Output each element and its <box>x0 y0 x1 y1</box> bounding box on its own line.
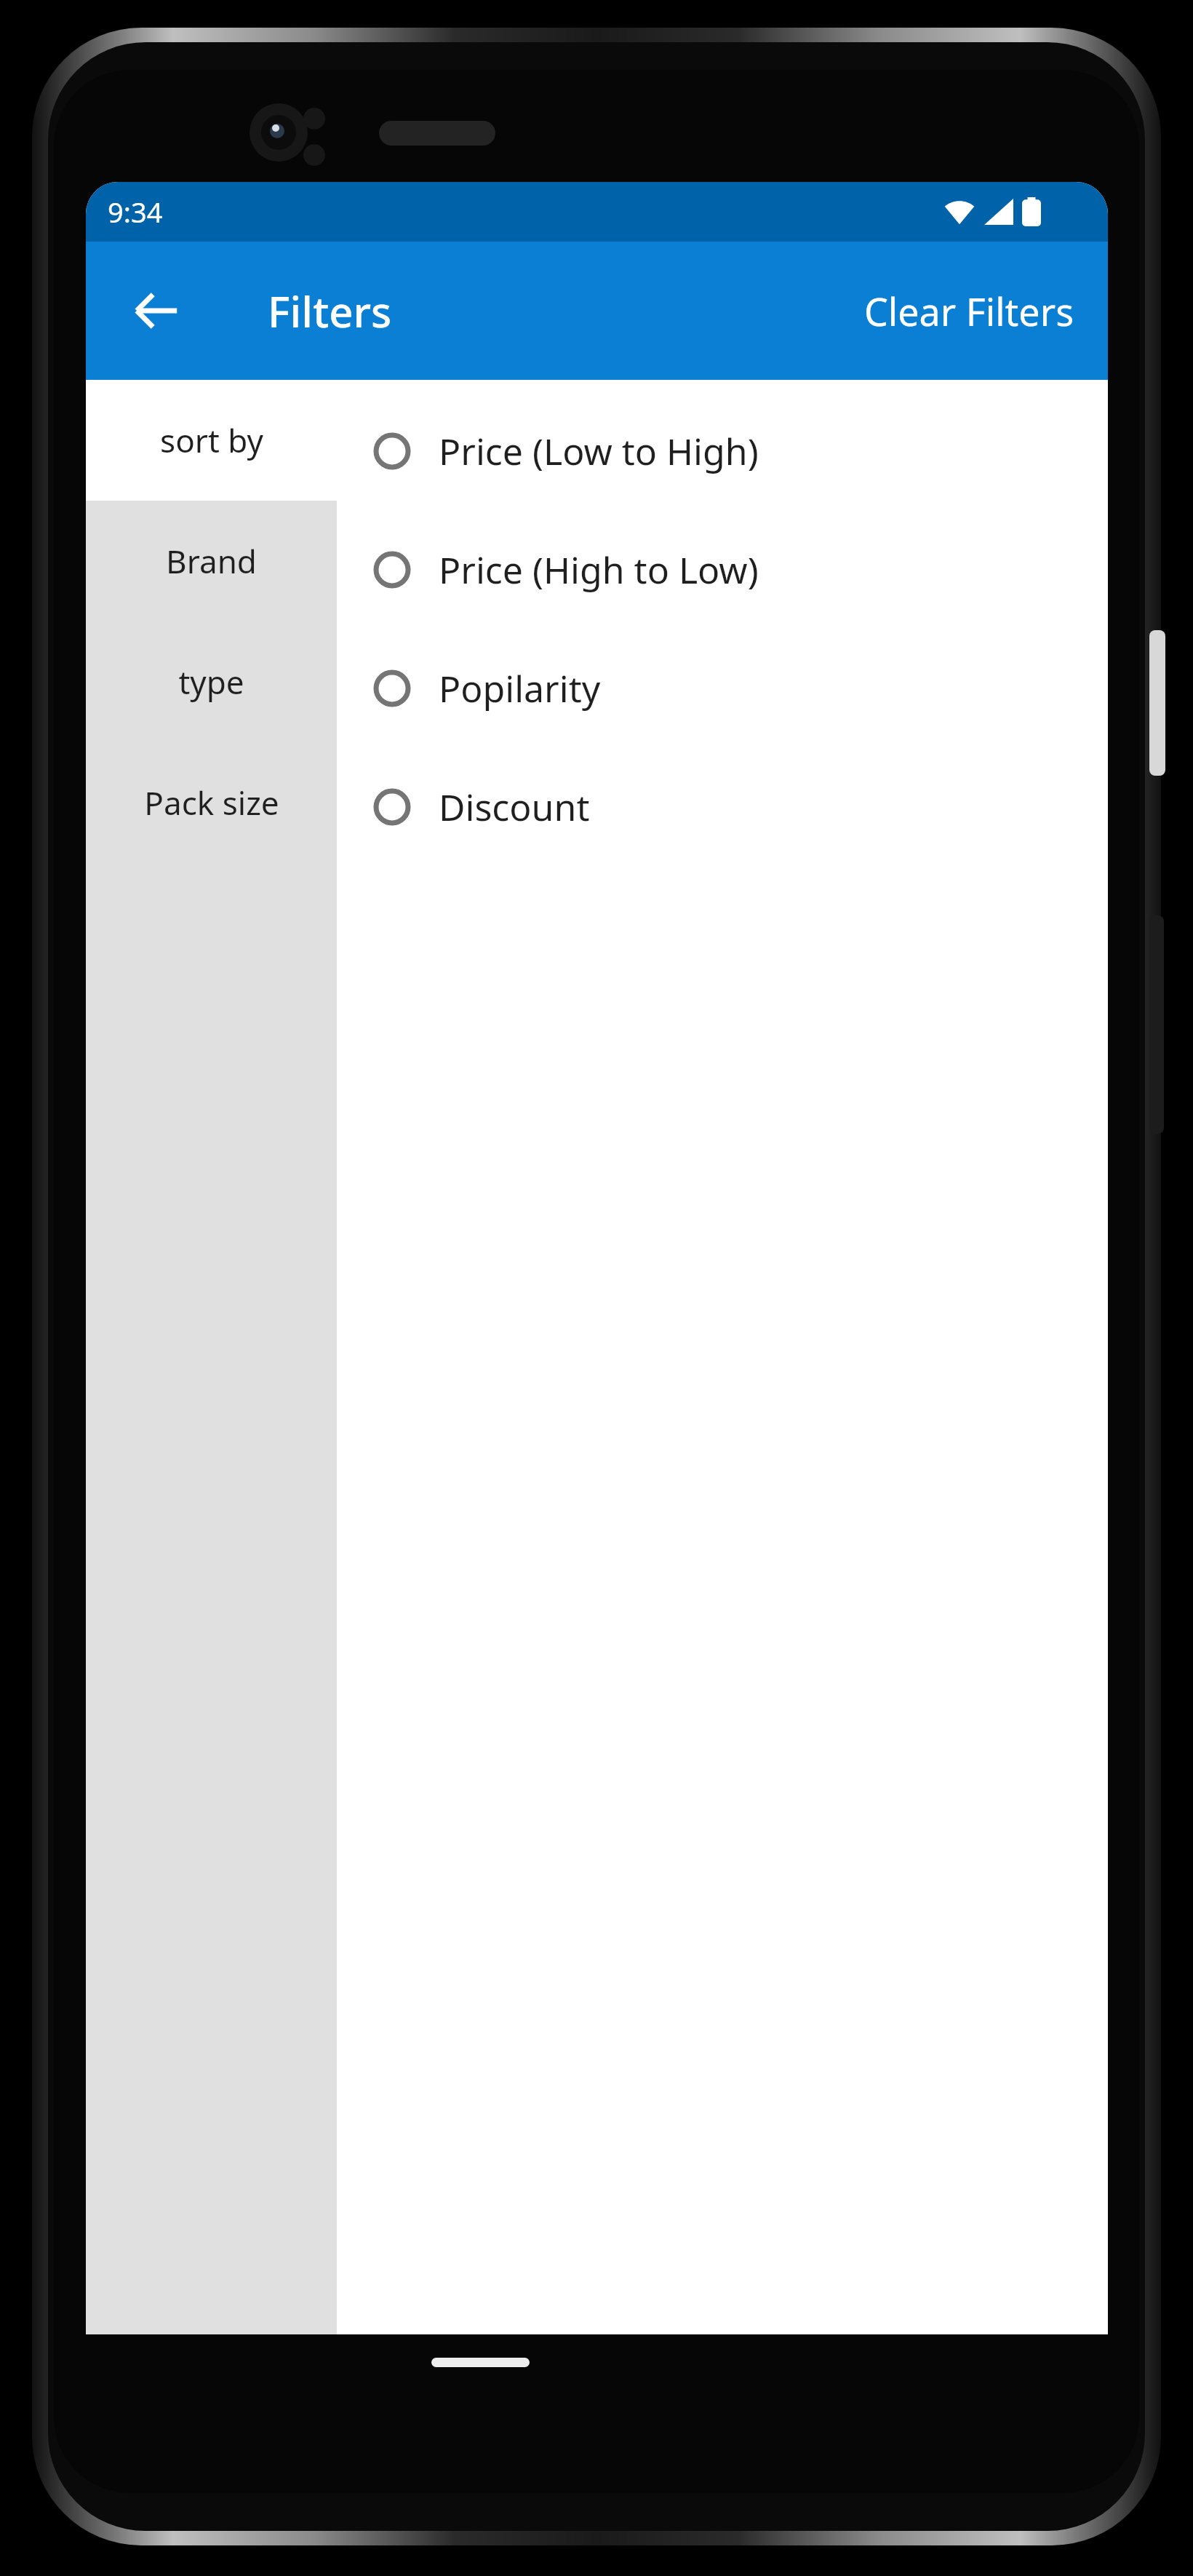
staticText: Clear Filters <box>864 285 1074 337</box>
button[interactable]: Brand <box>86 501 337 621</box>
button[interactable]: Discount <box>337 747 1108 866</box>
staticText: Pack size <box>144 781 279 824</box>
staticText: sort by <box>160 418 263 462</box>
button[interactable]: Popilarity <box>337 629 1108 747</box>
button[interactable]: sort by <box>86 380 337 501</box>
staticText: type <box>178 660 244 704</box>
staticText: 9:34 <box>108 193 163 231</box>
staticText: Price (Low to High) <box>439 426 759 476</box>
button[interactable]: Price (High to Low) <box>337 510 1108 629</box>
staticText: Discount <box>439 782 590 832</box>
staticText: Filters <box>268 282 392 340</box>
button[interactable]: Price (Low to High) <box>337 391 1108 510</box>
button[interactable]: Pack size <box>86 742 337 863</box>
button[interactable]: Clear Filters <box>855 275 1083 347</box>
staticText: Popilarity <box>439 664 601 713</box>
button[interactable]: type <box>86 621 337 742</box>
staticText: Price (High to Low) <box>439 545 759 595</box>
staticText: Brand <box>166 539 257 583</box>
button[interactable]: Back <box>118 272 195 349</box>
